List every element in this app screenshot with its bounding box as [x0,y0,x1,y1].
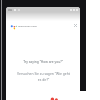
staticText: Try saying “How are you?” [23,59,63,63]
staticText: Versuchen Sie zu sagen “Wie geht es dir?… [17,71,70,82]
staticText: Interpreter mode [18,25,37,28]
button[interactable]: Interpreter mode [6,21,80,31]
button[interactable]: Close [72,22,78,28]
